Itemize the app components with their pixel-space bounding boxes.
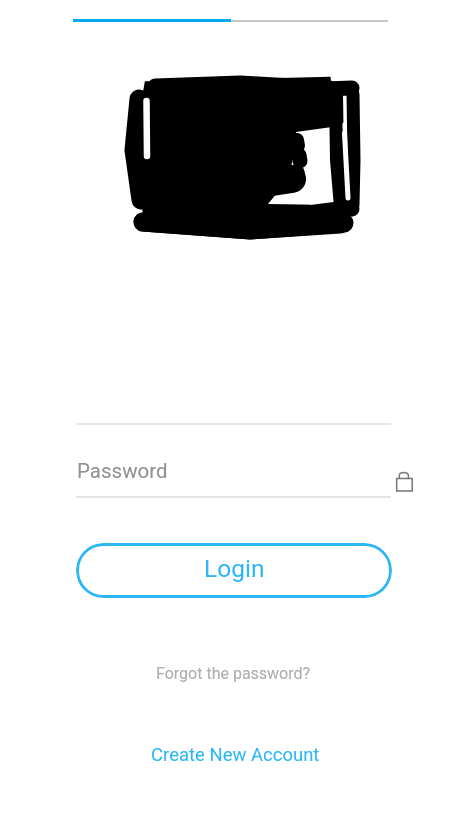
staticText: Password <box>77 459 168 483</box>
button[interactable]: Create New Account <box>145 740 325 770</box>
staticText: Login <box>204 554 265 583</box>
staticText: Forgot the password? <box>156 664 311 683</box>
staticText: Create New Account <box>151 744 320 766</box>
other: Show password <box>395 469 413 492</box>
button[interactable]: Forgot the password? <box>150 658 316 688</box>
button[interactable]: Password <box>76 452 391 496</box>
button[interactable]: Login <box>76 543 392 598</box>
